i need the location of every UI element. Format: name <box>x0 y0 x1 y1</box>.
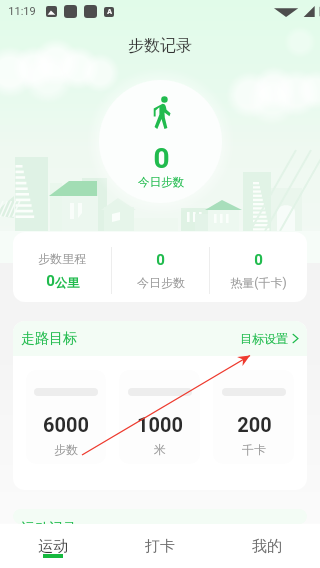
staticText: 1000 <box>137 413 183 436</box>
staticText: 今日步数 <box>137 275 185 290</box>
staticText: A <box>107 8 112 16</box>
staticText: 0 <box>46 272 55 290</box>
staticText: 11:19 <box>8 5 36 18</box>
button[interactable]: 1000 <box>119 370 200 464</box>
staticText: 0 <box>153 142 170 175</box>
staticText: 步数里程 <box>38 251 86 266</box>
button[interactable]: 目标设置 <box>240 331 299 346</box>
staticText: 今日步数 <box>138 175 184 189</box>
staticText: 米 <box>154 442 166 457</box>
staticText: 200 <box>237 413 272 436</box>
staticText: 0 <box>254 251 263 269</box>
button[interactable]: 200 <box>213 370 294 464</box>
staticText: 公里 <box>55 275 79 290</box>
staticText: 步数记录 <box>128 36 192 56</box>
button[interactable]: 打卡 <box>106 524 213 568</box>
button[interactable]: 运动 <box>0 524 106 568</box>
staticText: 我的 <box>252 537 282 556</box>
staticText: 步数 <box>54 442 78 457</box>
staticText: 运动 <box>38 537 68 556</box>
button[interactable]: 我的 <box>213 524 320 568</box>
staticText: 千卡 <box>242 442 266 457</box>
staticText: 打卡 <box>145 537 175 556</box>
staticText: 0 <box>156 251 165 269</box>
staticText: 6000 <box>43 413 89 436</box>
button[interactable]: 6000 <box>26 370 106 464</box>
staticText: 运动记录 <box>21 520 77 524</box>
staticText: 目标设置 <box>240 331 288 346</box>
staticText: 热量(千卡) <box>230 275 287 290</box>
staticText: 走路目标 <box>21 330 77 348</box>
